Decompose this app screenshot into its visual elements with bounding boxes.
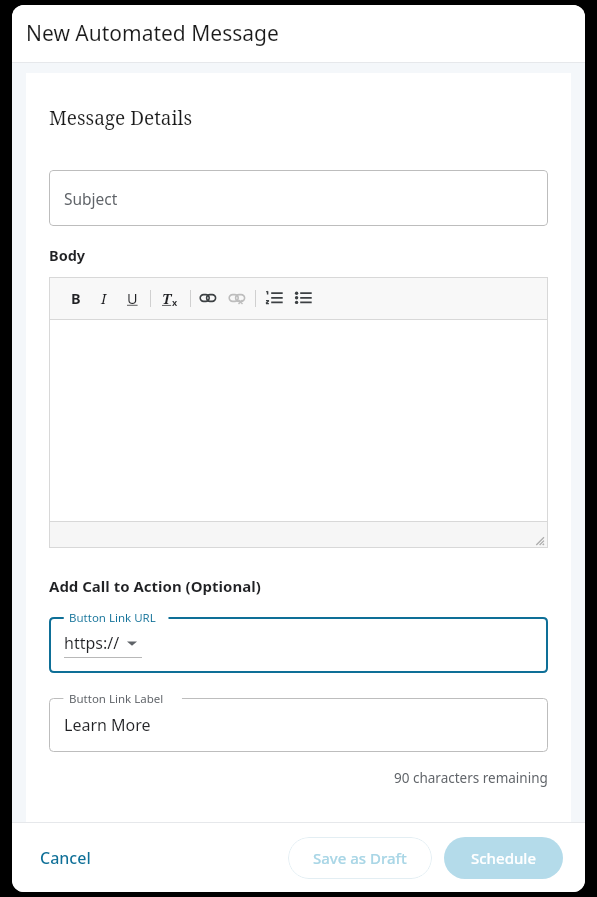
staticText: T xyxy=(162,289,172,308)
staticText: Button Link Label xyxy=(69,691,164,707)
staticText: Learn More xyxy=(64,714,151,736)
button[interactable]: Italic xyxy=(93,287,115,309)
staticText: U xyxy=(127,288,138,308)
button[interactable]: Clear formatting xyxy=(158,286,182,310)
button[interactable]: Button Link Label xyxy=(49,698,548,752)
staticText: 90 characters remaining xyxy=(394,769,548,787)
staticText: Button Link URL xyxy=(69,610,156,626)
button[interactable]: Schedule xyxy=(444,837,563,879)
button[interactable]: Button Link URL xyxy=(49,617,548,673)
staticText: x xyxy=(172,296,178,308)
button[interactable]: Underline xyxy=(121,287,143,309)
staticText: B xyxy=(71,288,81,308)
button[interactable]: Bulleted list xyxy=(294,289,312,307)
button[interactable]: Save as Draft xyxy=(288,837,432,879)
staticText: Body xyxy=(49,245,86,265)
button[interactable]: Cancel xyxy=(34,839,97,877)
staticText: New Automated Message xyxy=(26,19,279,48)
staticText: Subject xyxy=(64,188,118,209)
staticText: Schedule xyxy=(471,848,536,868)
button[interactable]: Numbered list xyxy=(265,289,283,307)
staticText: I xyxy=(101,288,107,308)
button[interactable]: Insert link xyxy=(199,289,217,307)
staticText: Cancel xyxy=(40,847,91,869)
other: Remove link xyxy=(228,289,246,307)
staticText: Message Details xyxy=(49,105,193,131)
staticText: Save as Draft xyxy=(313,848,407,868)
button[interactable]: Bold xyxy=(65,287,87,309)
staticText: Add Call to Action (Optional) xyxy=(49,576,261,596)
staticText: https:// xyxy=(64,632,120,654)
button[interactable]: Subject xyxy=(49,170,548,226)
